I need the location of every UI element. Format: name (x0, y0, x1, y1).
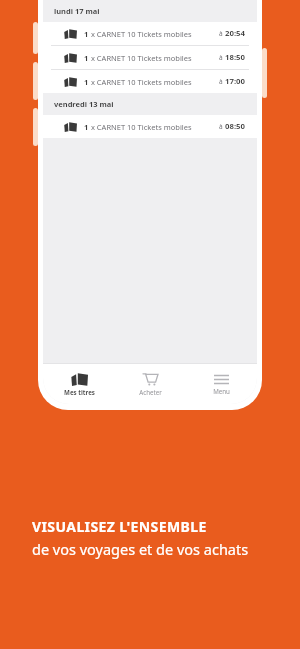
staticText: de vos voyages et de vos achats (32, 539, 249, 559)
staticText: x CARNET 10 Tickets mobiles (89, 122, 192, 132)
button[interactable]: 1 (43, 46, 257, 69)
staticText: 20:54 (225, 28, 246, 39)
button[interactable]: Menu (186, 364, 257, 404)
staticText: Mes titres (64, 388, 95, 396)
button[interactable]: 1 (43, 22, 257, 45)
staticText: x CARNET 10 Tickets mobiles (89, 77, 192, 87)
staticText: à (219, 122, 225, 131)
button[interactable]: 1 (43, 70, 257, 93)
staticText: 1 (84, 53, 89, 63)
other: Acheter (143, 373, 158, 386)
button[interactable]: Acheter (115, 364, 186, 404)
button[interactable]: 1 (43, 115, 257, 138)
staticText: Acheter (139, 388, 162, 396)
button[interactable]: Mes titres (43, 364, 115, 404)
staticText: Menu (213, 387, 230, 395)
staticText: 17:00 (225, 76, 246, 87)
staticText: à (219, 29, 225, 38)
staticText: x CARNET 10 Tickets mobiles (89, 29, 192, 39)
staticText: vendredi 13 mai (54, 99, 114, 109)
staticText: VISUALISEZ L'ENSEMBLE (32, 517, 207, 536)
staticText: 18:50 (225, 52, 246, 63)
staticText: 1 (84, 77, 89, 87)
staticText: x CARNET 10 Tickets mobiles (89, 53, 192, 63)
staticText: 1 (84, 122, 89, 132)
staticText: à (219, 53, 225, 62)
other: Menu (214, 374, 229, 385)
staticText: à (219, 77, 225, 86)
staticText: lundi 17 mai (54, 6, 100, 16)
staticText: 08:50 (225, 121, 246, 132)
staticText: 1 (84, 29, 89, 39)
